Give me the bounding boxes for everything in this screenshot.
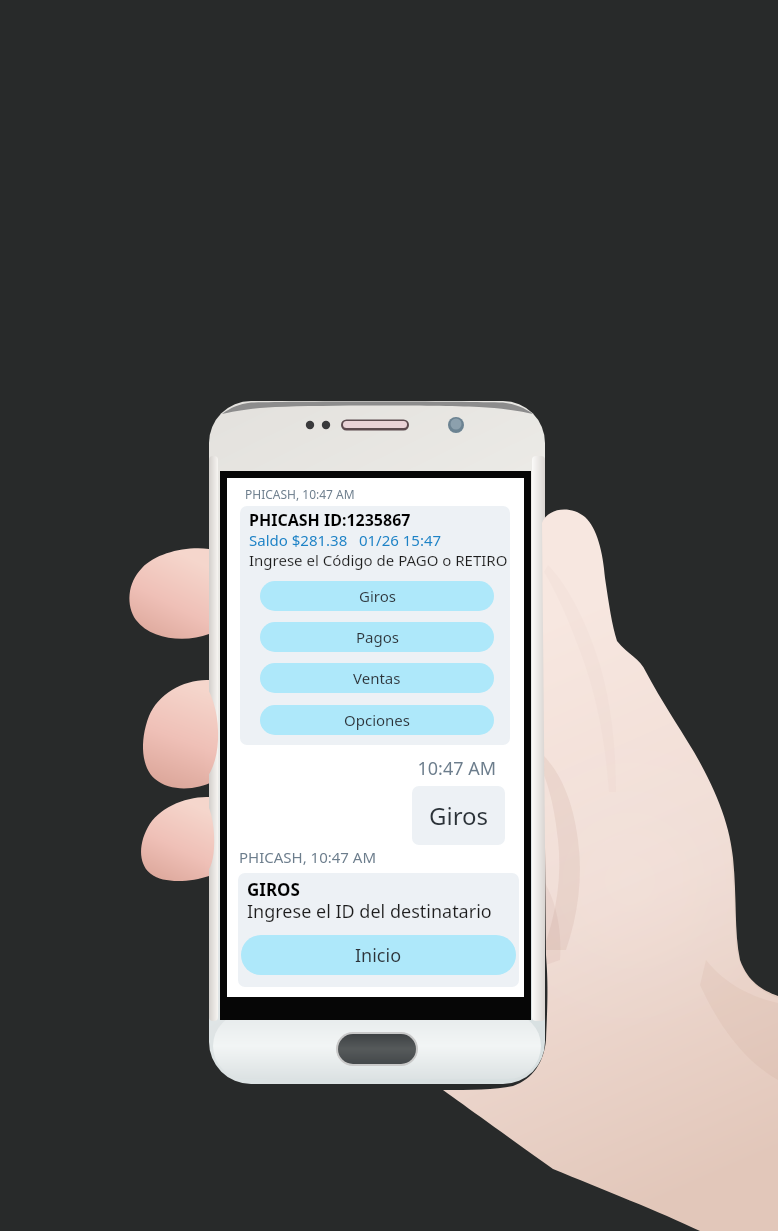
staticText: PHICASH, 10:47 AM	[245, 486, 355, 502]
staticText: Pagos	[356, 627, 399, 647]
staticText: GIROS	[247, 878, 300, 901]
button[interactable]: Giros	[260, 581, 494, 611]
staticText: Ventas	[353, 668, 401, 688]
staticText: Giros	[359, 586, 396, 606]
button[interactable]: Inicio	[241, 935, 516, 975]
staticText: Opciones	[344, 710, 411, 730]
staticText: PHICASH, 10:47 AM	[239, 847, 377, 867]
button[interactable]: Ventas	[260, 663, 494, 693]
staticText: Ingrese el Código de PAGO o RETIRO	[249, 550, 508, 570]
button[interactable]: Giros	[412, 786, 505, 845]
staticText: Ingrese el ID del destinatario	[247, 899, 492, 924]
staticText: Inicio	[355, 943, 402, 968]
staticText: 10:47 AM	[227, 756, 496, 781]
staticText: Giros	[429, 799, 489, 832]
staticText: Saldo $281.38 01/26 15:47	[249, 530, 442, 550]
staticText: PHICASH ID:1235867	[249, 509, 411, 531]
button[interactable]: Opciones	[260, 705, 494, 735]
button[interactable]: Pagos	[260, 622, 494, 652]
button[interactable]: Home	[336, 1032, 418, 1066]
